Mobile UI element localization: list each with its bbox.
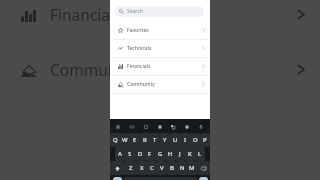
staticText: Financials	[50, 4, 122, 25]
button[interactable]: Y	[160, 133, 170, 147]
button[interactable]: Financials	[110, 58, 210, 75]
staticText: K	[188, 150, 192, 158]
staticText: G	[158, 150, 163, 158]
button[interactable]: Search	[115, 6, 204, 17]
button[interactable]: R	[140, 133, 150, 147]
staticText: N	[180, 164, 185, 172]
staticText: Favorites	[127, 27, 149, 34]
staticText: X	[140, 164, 144, 172]
staticText: U	[173, 136, 178, 144]
staticText: Financials	[127, 63, 151, 70]
button[interactable]: Q	[110, 133, 120, 147]
staticText: B	[170, 164, 174, 172]
button[interactable]: J	[175, 147, 185, 161]
button[interactable]: A	[115, 147, 125, 161]
staticText: O	[193, 136, 198, 144]
button[interactable]: Voice	[196, 122, 205, 131]
staticText: P	[203, 136, 207, 144]
button[interactable]: H	[165, 147, 175, 161]
button[interactable]: W	[120, 133, 130, 147]
button[interactable]: F	[145, 147, 155, 161]
staticText: S	[128, 150, 132, 158]
button[interactable]: Settings	[155, 122, 164, 131]
staticText: C	[150, 164, 154, 172]
staticText: H	[168, 150, 173, 158]
button[interactable]: Z	[125, 161, 136, 175]
button[interactable]: Favorites	[110, 22, 210, 39]
button[interactable]: Symbols	[113, 177, 122, 180]
button[interactable]: E	[130, 133, 140, 147]
button[interactable]: Technicals	[110, 40, 210, 57]
staticText: F	[148, 150, 152, 158]
staticText: J	[179, 150, 181, 158]
staticText: Z	[129, 164, 133, 172]
button[interactable]: S	[125, 147, 135, 161]
button[interactable]: G	[155, 147, 165, 161]
staticText: M	[189, 164, 195, 172]
staticText: E	[133, 136, 137, 144]
staticText: Community	[127, 81, 155, 88]
button[interactable]: V	[157, 161, 167, 175]
button[interactable]: Emoji	[113, 122, 122, 131]
button[interactable]: P	[200, 133, 210, 147]
button[interactable]: K	[185, 147, 195, 161]
staticText: Technicals	[127, 45, 152, 52]
staticText: L	[198, 150, 202, 158]
button[interactable]: O	[190, 133, 200, 147]
button[interactable]: Enter	[199, 177, 208, 180]
button[interactable]: Backspace	[197, 161, 210, 175]
staticText: T	[153, 136, 157, 144]
button[interactable]: L	[195, 147, 205, 161]
button[interactable]: D	[135, 147, 145, 161]
button[interactable]: T	[150, 133, 160, 147]
button[interactable]: Sticker	[182, 122, 191, 131]
button[interactable]: N	[177, 161, 187, 175]
button[interactable]: Translate	[168, 122, 177, 131]
button[interactable]: C	[147, 161, 157, 175]
staticText: Community	[50, 59, 135, 80]
staticText: W	[122, 136, 128, 144]
button[interactable]: Clipboard	[141, 122, 150, 131]
button[interactable]: M	[187, 161, 197, 175]
staticText: Y	[163, 136, 167, 144]
button[interactable]: X	[136, 161, 147, 175]
staticText: I	[184, 136, 187, 144]
button[interactable]: Community	[0, 58, 320, 80]
staticText: A	[118, 150, 122, 158]
button[interactable]: Financials	[0, 3, 320, 25]
button[interactable]: Community	[110, 76, 210, 93]
staticText: Search	[127, 8, 143, 15]
button[interactable]: I	[180, 133, 190, 147]
staticText: R	[143, 136, 147, 144]
button[interactable]: Shift	[110, 161, 125, 175]
button[interactable]: GIF	[127, 122, 136, 131]
button[interactable]: B	[167, 161, 177, 175]
staticText: D	[138, 150, 143, 158]
staticText: Q	[113, 136, 118, 144]
staticText: V	[160, 164, 164, 172]
button[interactable]: U	[170, 133, 180, 147]
